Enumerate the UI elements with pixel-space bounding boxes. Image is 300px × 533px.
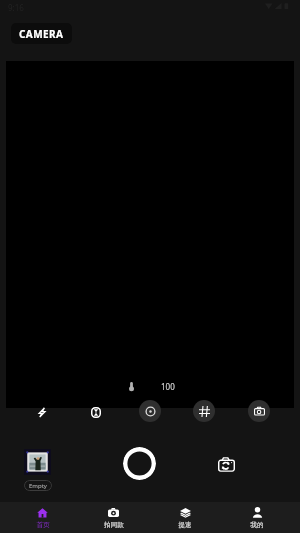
button[interactable]: Exposure (139, 400, 161, 422)
staticText: 拍同款 (104, 521, 124, 529)
button[interactable]: Flash (31, 401, 53, 423)
button[interactable]: CAMERA (11, 23, 72, 44)
staticText: 9:16 (8, 2, 24, 13)
staticText: 提速 (178, 521, 192, 529)
button[interactable]: Empty (24, 480, 52, 491)
staticText: 100 (161, 381, 175, 392)
button[interactable]: Gallery (24, 449, 51, 475)
button[interactable]: Grid (193, 400, 215, 422)
staticText: CAMERA (19, 27, 64, 41)
button[interactable]: 拍同款 (78, 502, 149, 533)
staticText: 首页 (36, 521, 50, 529)
button[interactable]: Camera settings (248, 400, 270, 422)
button[interactable]: 首页 (7, 502, 78, 533)
button[interactable]: Switch camera (215, 453, 237, 475)
button[interactable]: Timer (85, 401, 107, 423)
staticText: Empty (29, 482, 47, 490)
button[interactable]: 我的 (221, 502, 293, 533)
staticText: 我的 (250, 521, 264, 529)
button[interactable]: 提速 (149, 502, 221, 533)
button[interactable]: Shutter (123, 447, 156, 480)
